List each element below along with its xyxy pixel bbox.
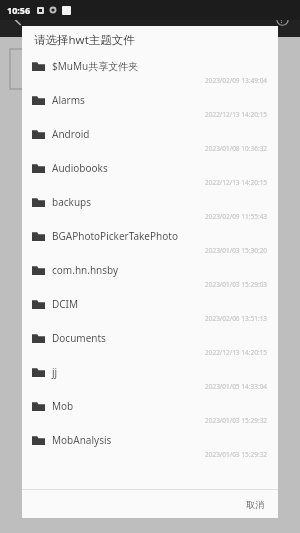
button[interactable]: backups <box>22 190 278 224</box>
button[interactable]: MobAnalysis <box>22 428 278 462</box>
staticText: 请选择hwt主题文件 <box>34 32 135 48</box>
staticText: 2023/02/09 13:49:04 <box>205 76 268 85</box>
staticText: $MuMu共享文件夹 <box>52 59 139 73</box>
staticText: Audiobooks <box>52 161 108 175</box>
button[interactable]: Back <box>4 5 32 33</box>
button[interactable]: Mob <box>22 394 278 428</box>
staticText: 2023/01/03 15:29:03 <box>205 280 268 289</box>
staticText: 2023/01/03 15:29:32 <box>205 450 268 459</box>
staticText: 2022/12/13 14:20:15 <box>205 110 268 119</box>
staticText: 10:56 <box>7 4 31 16</box>
staticText: Alarms <box>52 93 85 107</box>
staticText: Mob <box>52 399 74 413</box>
staticText: MobAnalysis <box>52 433 112 447</box>
button[interactable]: Documents <box>22 326 278 360</box>
button[interactable]: jj <box>22 360 278 394</box>
staticText: 2022/12/13 14:20:15 <box>205 178 268 187</box>
staticText: 2023/01/05 14:33:04 <box>205 382 268 391</box>
button[interactable]: Help <box>268 5 296 33</box>
staticText: 2023/02/09 11:55:43 <box>205 212 268 221</box>
staticText: ? <box>280 14 284 25</box>
staticText: 2023/01/03 15:29:32 <box>205 416 268 425</box>
staticText: com.hn.hnsby <box>52 263 119 277</box>
staticText: 2023/02/06 13:51:13 <box>205 314 268 323</box>
staticText: 取消 <box>246 499 264 510</box>
button[interactable]: com.hn.hnsby <box>22 258 278 292</box>
staticText: 2023/01/08 10:36:32 <box>205 144 268 153</box>
staticText: DCIM <box>52 297 79 311</box>
button[interactable]: $MuMu共享文件夹 <box>22 54 278 88</box>
staticText: backups <box>52 195 92 209</box>
button[interactable]: DCIM <box>22 292 278 326</box>
button[interactable]: 取消 <box>232 493 278 516</box>
button[interactable]: Alarms <box>22 88 278 122</box>
staticText: 2023/01/03 15:30:20 <box>205 246 268 255</box>
button[interactable]: Audiobooks <box>22 156 278 190</box>
staticText: Documents <box>52 331 106 345</box>
staticText: 2022/12/13 14:20:15 <box>205 348 268 357</box>
button[interactable]: Android <box>22 122 278 156</box>
staticText: jj <box>52 365 58 379</box>
staticText: BGAPhotoPickerTakePhoto <box>52 229 178 243</box>
button[interactable]: BGAPhotoPickerTakePhoto <box>22 224 278 258</box>
staticText: Android <box>52 127 90 141</box>
